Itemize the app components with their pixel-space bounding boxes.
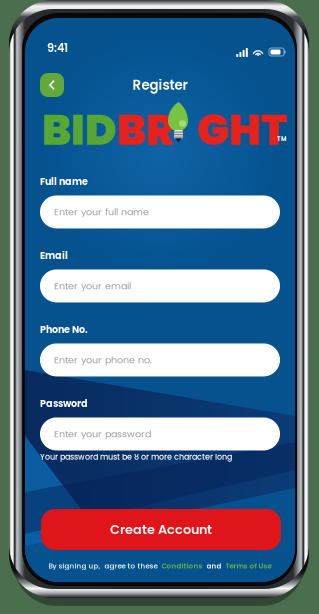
staticText: Password	[40, 397, 88, 410]
staticText: GHT	[197, 100, 287, 160]
staticText: Create Account	[110, 520, 212, 538]
staticText: BID	[42, 100, 117, 160]
button[interactable]: Conditions	[161, 561, 202, 571]
staticText: By signing up, agree to these	[48, 561, 157, 571]
staticText: Email	[40, 249, 68, 262]
button[interactable]: Enter your full name	[40, 195, 280, 228]
button[interactable]: Enter your email	[40, 269, 280, 302]
staticText: Enter your email	[54, 279, 131, 293]
staticText: Enter your full name	[54, 205, 149, 219]
staticText: Terms of Use	[225, 561, 271, 571]
staticText: Conditions	[161, 561, 202, 571]
staticText: Full name	[40, 175, 88, 188]
staticText: Phone No.	[40, 323, 88, 336]
staticText: Enter your password	[54, 427, 151, 441]
staticText: and	[206, 561, 221, 571]
staticText: BR	[117, 100, 175, 160]
staticText: TM	[277, 135, 287, 143]
staticText: Your password must be 8 or more characte…	[40, 451, 232, 463]
button[interactable]: Create Account	[41, 509, 281, 550]
button[interactable]: Back	[40, 73, 64, 97]
staticText: Register	[132, 76, 187, 94]
button[interactable]: Terms of Use	[225, 561, 271, 571]
button[interactable]: Enter your password	[40, 417, 280, 450]
button[interactable]: Enter your phone no.	[40, 343, 280, 376]
staticText: Enter your phone no.	[54, 353, 152, 367]
staticText: 9:41	[47, 40, 68, 56]
